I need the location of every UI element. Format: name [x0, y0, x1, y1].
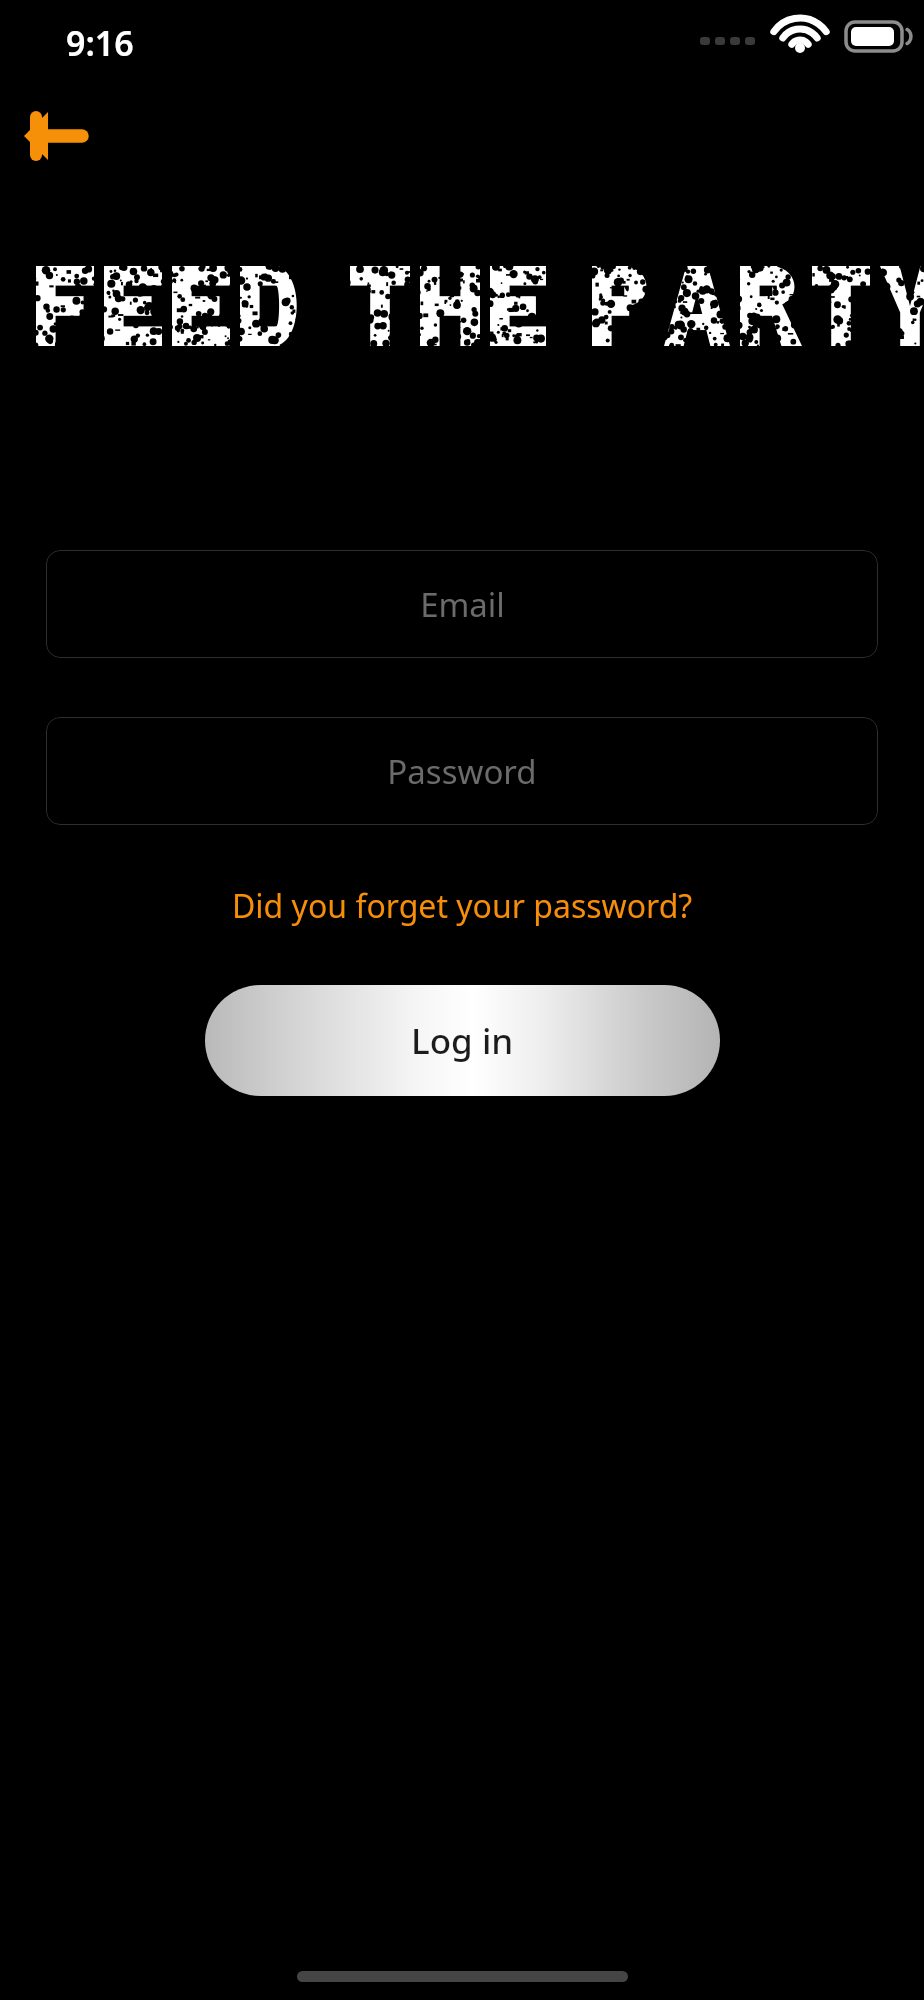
button[interactable]: Password — [46, 717, 878, 825]
staticText: Did you forget your password? — [232, 884, 693, 928]
staticText: Log in — [411, 1017, 514, 1065]
staticText: Password — [387, 749, 537, 794]
staticText: Email — [420, 582, 505, 627]
button[interactable]: Email — [46, 550, 878, 658]
button[interactable]: Back — [16, 96, 96, 176]
button[interactable]: Did you forget your password? — [220, 878, 705, 934]
staticText: 9:16 — [66, 20, 134, 66]
button[interactable]: Log in — [205, 985, 720, 1096]
